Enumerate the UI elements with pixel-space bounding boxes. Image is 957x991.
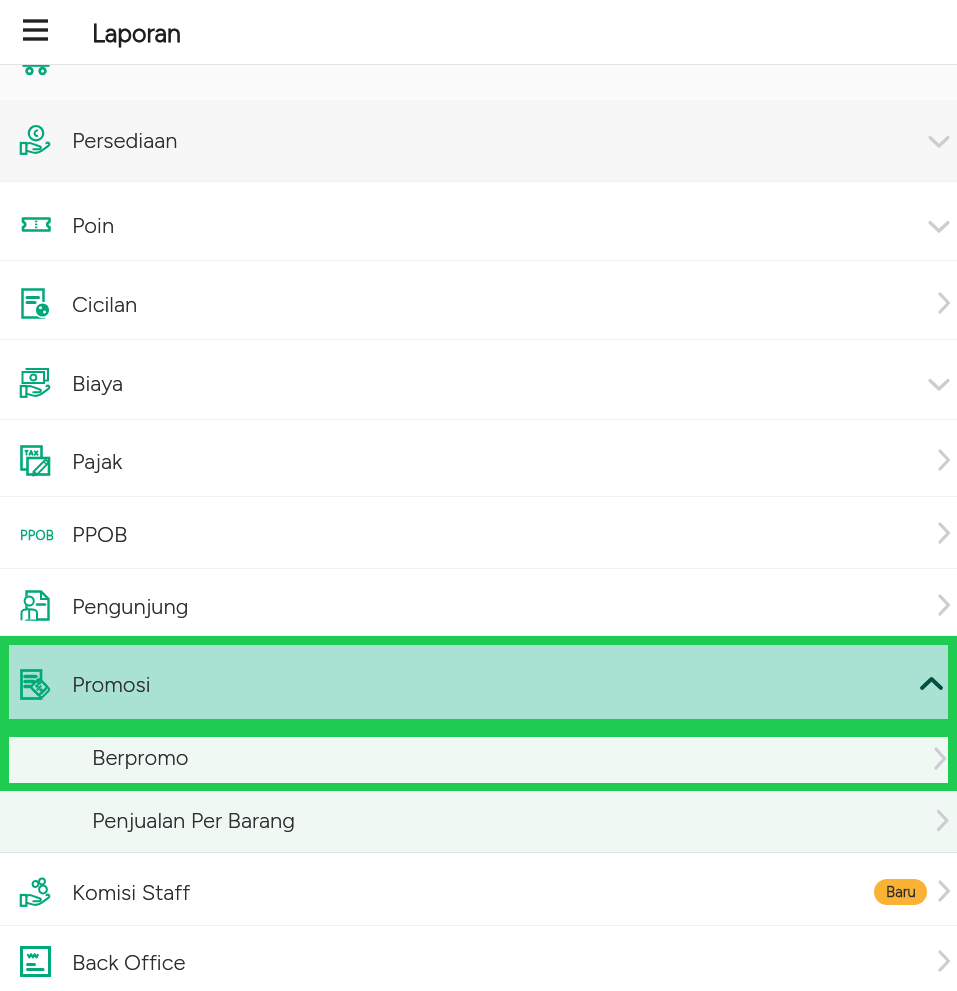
staticText: Persediaan [72,127,178,153]
staticText: Pengunjung [72,593,189,619]
staticText: Laporan [92,18,181,48]
staticText: PPOB [72,521,128,547]
staticText: Promosi [72,671,151,697]
staticText: Poin [72,212,115,238]
staticText: Pajak [72,448,123,474]
staticText: Berpromo [92,744,189,770]
staticText: Biaya [72,370,124,396]
staticText: Back Office [72,949,186,975]
staticText: Pajak [72,448,123,474]
button[interactable] [0,420,957,497]
staticText: Penjualan Per Barang [92,807,296,833]
staticText: Baru [886,883,916,901]
staticText: Berpromo [92,744,189,770]
staticText: Komisi Staff [72,879,191,905]
button[interactable] [0,340,957,420]
staticText: Poin [72,212,115,238]
staticText: PPOB [20,528,54,544]
button[interactable] [0,926,957,991]
staticText: Laporan [92,18,181,48]
button[interactable]: Collapse Promosi [918,671,945,698]
staticText: PPOB [72,521,128,547]
staticText: Promosi [72,671,151,697]
staticText: Biaya [72,370,124,396]
button[interactable] [0,791,957,853]
button[interactable] [9,737,948,783]
button[interactable] [9,645,948,719]
staticText: Komisi Staff [72,879,191,905]
button[interactable] [0,853,957,926]
button[interactable] [0,261,957,340]
button[interactable] [0,100,957,182]
button[interactable] [0,497,957,569]
staticText: Pengunjung [72,593,189,619]
button[interactable]: Open navigation menu [13,11,55,53]
staticText: Back Office [72,949,186,975]
staticText: Penjualan Per Barang [92,807,296,833]
button[interactable] [0,569,957,636]
staticText: Cicilan [72,291,138,317]
staticText: Cicilan [72,291,138,317]
button[interactable] [0,182,957,261]
staticText: Persediaan [72,127,178,153]
